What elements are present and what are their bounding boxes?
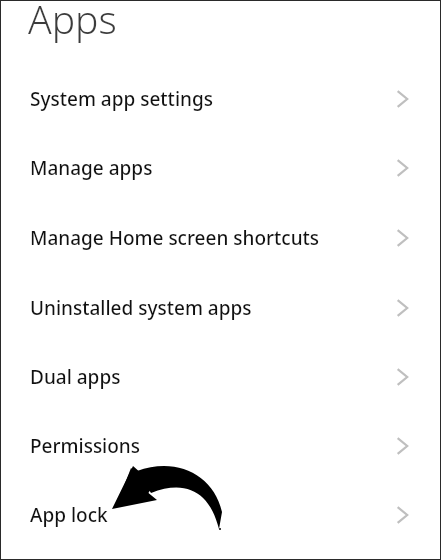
staticText: Dual apps [30,364,121,390]
button[interactable]: System app settings [0,64,441,133]
staticText: Uninstalled system apps [30,295,252,321]
staticText: App lock [30,502,108,528]
button[interactable]: Manage apps [0,133,441,202]
button[interactable]: Manage Home screen shortcuts [0,203,441,272]
staticText: Permissions [30,433,141,459]
staticText: Manage Home screen shortcuts [30,225,320,251]
staticText: Apps [28,0,117,45]
button[interactable]: Dual apps [0,342,441,411]
staticText: Manage apps [30,155,153,181]
other: Annotation arrow pointing to App lock [0,0,441,560]
button[interactable]: Permissions [0,411,441,480]
button[interactable]: App lock [0,480,441,549]
button[interactable]: Uninstalled system apps [0,273,441,342]
staticText: System app settings [30,86,213,112]
